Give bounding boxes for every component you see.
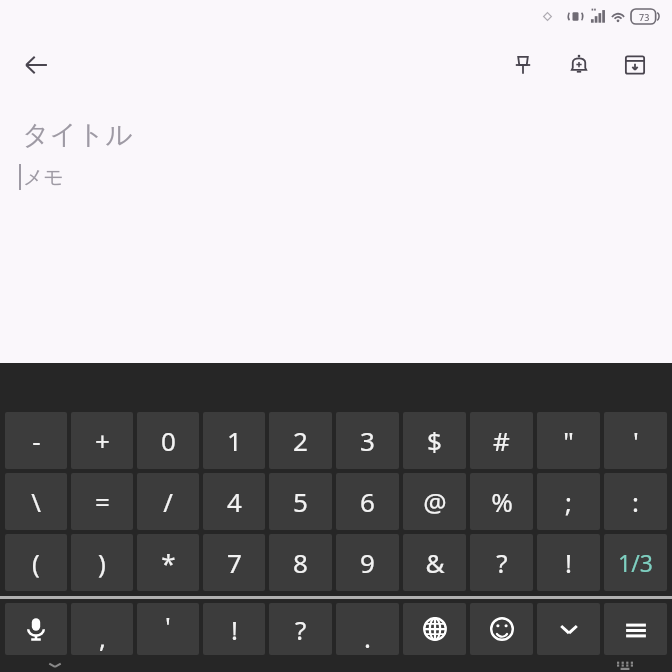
button[interactable]: 6	[336, 473, 399, 530]
button[interactable]: ;	[537, 473, 600, 530]
staticText: 0	[161, 423, 176, 458]
button[interactable]: '	[137, 603, 199, 655]
staticText: !	[565, 545, 572, 580]
button[interactable]: #	[470, 412, 533, 469]
staticText: 4	[227, 484, 242, 519]
button[interactable]: Emoji	[470, 603, 533, 655]
staticText: 8	[293, 545, 308, 580]
staticText: =	[95, 484, 110, 519]
staticText: $	[427, 423, 442, 458]
staticText: \	[31, 484, 41, 519]
button[interactable]: Hide keyboard	[537, 603, 600, 655]
staticText: 73	[639, 11, 650, 23]
button[interactable]: 0	[137, 412, 199, 469]
staticText: ?	[496, 545, 508, 580]
button[interactable]: Archive	[612, 42, 658, 88]
button[interactable]: 5	[269, 473, 332, 530]
button[interactable]: %	[470, 473, 533, 530]
staticText: 9	[360, 545, 375, 580]
button[interactable]: !	[537, 534, 600, 591]
staticText: *	[161, 545, 176, 580]
staticText: ?	[295, 612, 307, 647]
staticText: /	[163, 484, 173, 519]
button[interactable]: '	[604, 412, 667, 469]
staticText: メモ	[23, 165, 64, 190]
staticText: タイトル	[22, 118, 133, 152]
staticText: ;	[565, 484, 572, 519]
button[interactable]: 1/3	[604, 534, 667, 591]
button[interactable]: 4	[203, 473, 265, 530]
button[interactable]: Menu	[604, 603, 667, 655]
button[interactable]: /	[137, 473, 199, 530]
staticText: "	[563, 423, 574, 458]
button[interactable]: $	[403, 412, 466, 469]
button[interactable]: +	[71, 412, 133, 469]
button[interactable]: &	[403, 534, 466, 591]
button[interactable]: *	[137, 534, 199, 591]
staticText: 1	[227, 423, 242, 458]
button[interactable]: ?	[470, 534, 533, 591]
button[interactable]: Pin	[500, 42, 546, 88]
button[interactable]: Back	[36, 658, 74, 672]
staticText: '	[633, 423, 639, 458]
button[interactable]: 9	[336, 534, 399, 591]
staticText: &	[425, 545, 445, 580]
button[interactable]: Add reminder	[556, 42, 602, 88]
staticText: 1/3	[618, 547, 653, 578]
button[interactable]: ?	[269, 603, 332, 655]
staticText: (	[32, 545, 40, 580]
button[interactable]: (	[5, 534, 67, 591]
button[interactable]: 3	[336, 412, 399, 469]
staticText: !	[231, 612, 238, 647]
button[interactable]: \	[5, 473, 67, 530]
staticText: @	[423, 484, 447, 519]
button[interactable]: Back	[12, 41, 60, 89]
staticText: 3	[360, 423, 375, 458]
button[interactable]: ,	[71, 603, 133, 655]
staticText: 6	[360, 484, 375, 519]
button[interactable]: @	[403, 473, 466, 530]
button[interactable]: =	[71, 473, 133, 530]
staticText: 2	[293, 423, 308, 458]
button[interactable]: Change language	[403, 603, 466, 655]
staticText: .	[364, 620, 371, 655]
staticText: +	[95, 423, 110, 458]
button[interactable]: !	[203, 603, 265, 655]
staticText: %	[491, 484, 513, 519]
staticText: -	[32, 423, 41, 458]
staticText: )	[98, 545, 106, 580]
button[interactable]: 1	[203, 412, 265, 469]
button[interactable]: 8	[269, 534, 332, 591]
button[interactable]: 2	[269, 412, 332, 469]
button[interactable]: Voice input	[5, 603, 67, 655]
staticText: #	[493, 423, 510, 458]
staticText: '	[165, 608, 171, 643]
button[interactable]: -	[5, 412, 67, 469]
button[interactable]: 7	[203, 534, 265, 591]
button[interactable]: .	[336, 603, 399, 655]
button[interactable]: "	[537, 412, 600, 469]
button[interactable]: :	[604, 473, 667, 530]
staticText: 5	[293, 484, 308, 519]
staticText: ,	[99, 620, 106, 655]
button[interactable]: )	[71, 534, 133, 591]
button[interactable]: Keyboard	[606, 658, 644, 672]
staticText: 7	[227, 545, 242, 580]
staticText: :	[632, 484, 639, 519]
